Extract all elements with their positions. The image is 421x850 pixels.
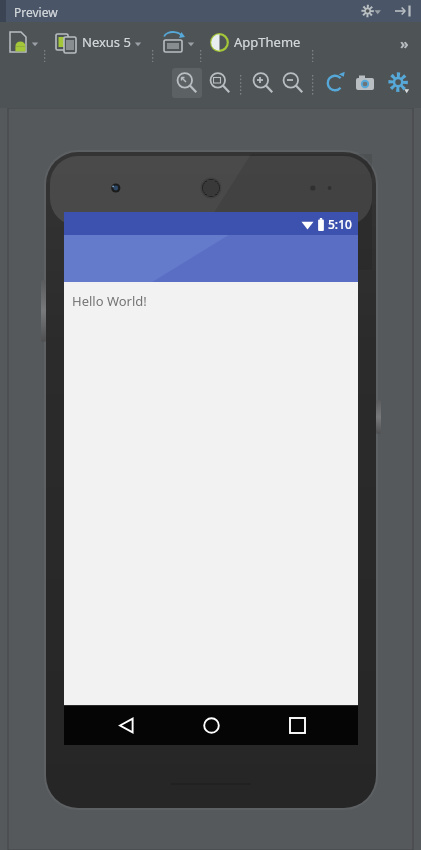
button[interactable]: Preview options — [358, 2, 384, 20]
button[interactable]: More options — [394, 34, 414, 50]
button[interactable]: Render target — [8, 30, 39, 54]
button[interactable]: Recent apps — [273, 705, 321, 745]
staticText: 5:10 — [328, 216, 352, 232]
staticText: » — [400, 34, 409, 50]
button[interactable]: Zoom out — [278, 68, 308, 98]
button[interactable]: Back — [102, 705, 150, 745]
button[interactable]: Zoom to fit — [172, 68, 202, 98]
staticText: Hello World! — [72, 292, 147, 310]
button[interactable]: Screenshot — [350, 68, 380, 98]
staticText: Preview — [14, 4, 58, 20]
button[interactable]: Settings — [384, 68, 414, 98]
button[interactable]: Hide — [392, 2, 414, 20]
button[interactable]: Nexus 5 — [55, 30, 142, 54]
button[interactable]: Orientation — [162, 30, 195, 54]
button[interactable]: Actual size — [205, 68, 235, 98]
staticText: Nexus 5 — [82, 33, 131, 51]
button[interactable]: Refresh — [320, 68, 350, 98]
staticText: AppTheme — [234, 33, 301, 51]
button[interactable]: Zoom in — [248, 68, 278, 98]
button[interactable]: Home — [187, 705, 235, 745]
button[interactable]: AppTheme — [210, 30, 301, 54]
